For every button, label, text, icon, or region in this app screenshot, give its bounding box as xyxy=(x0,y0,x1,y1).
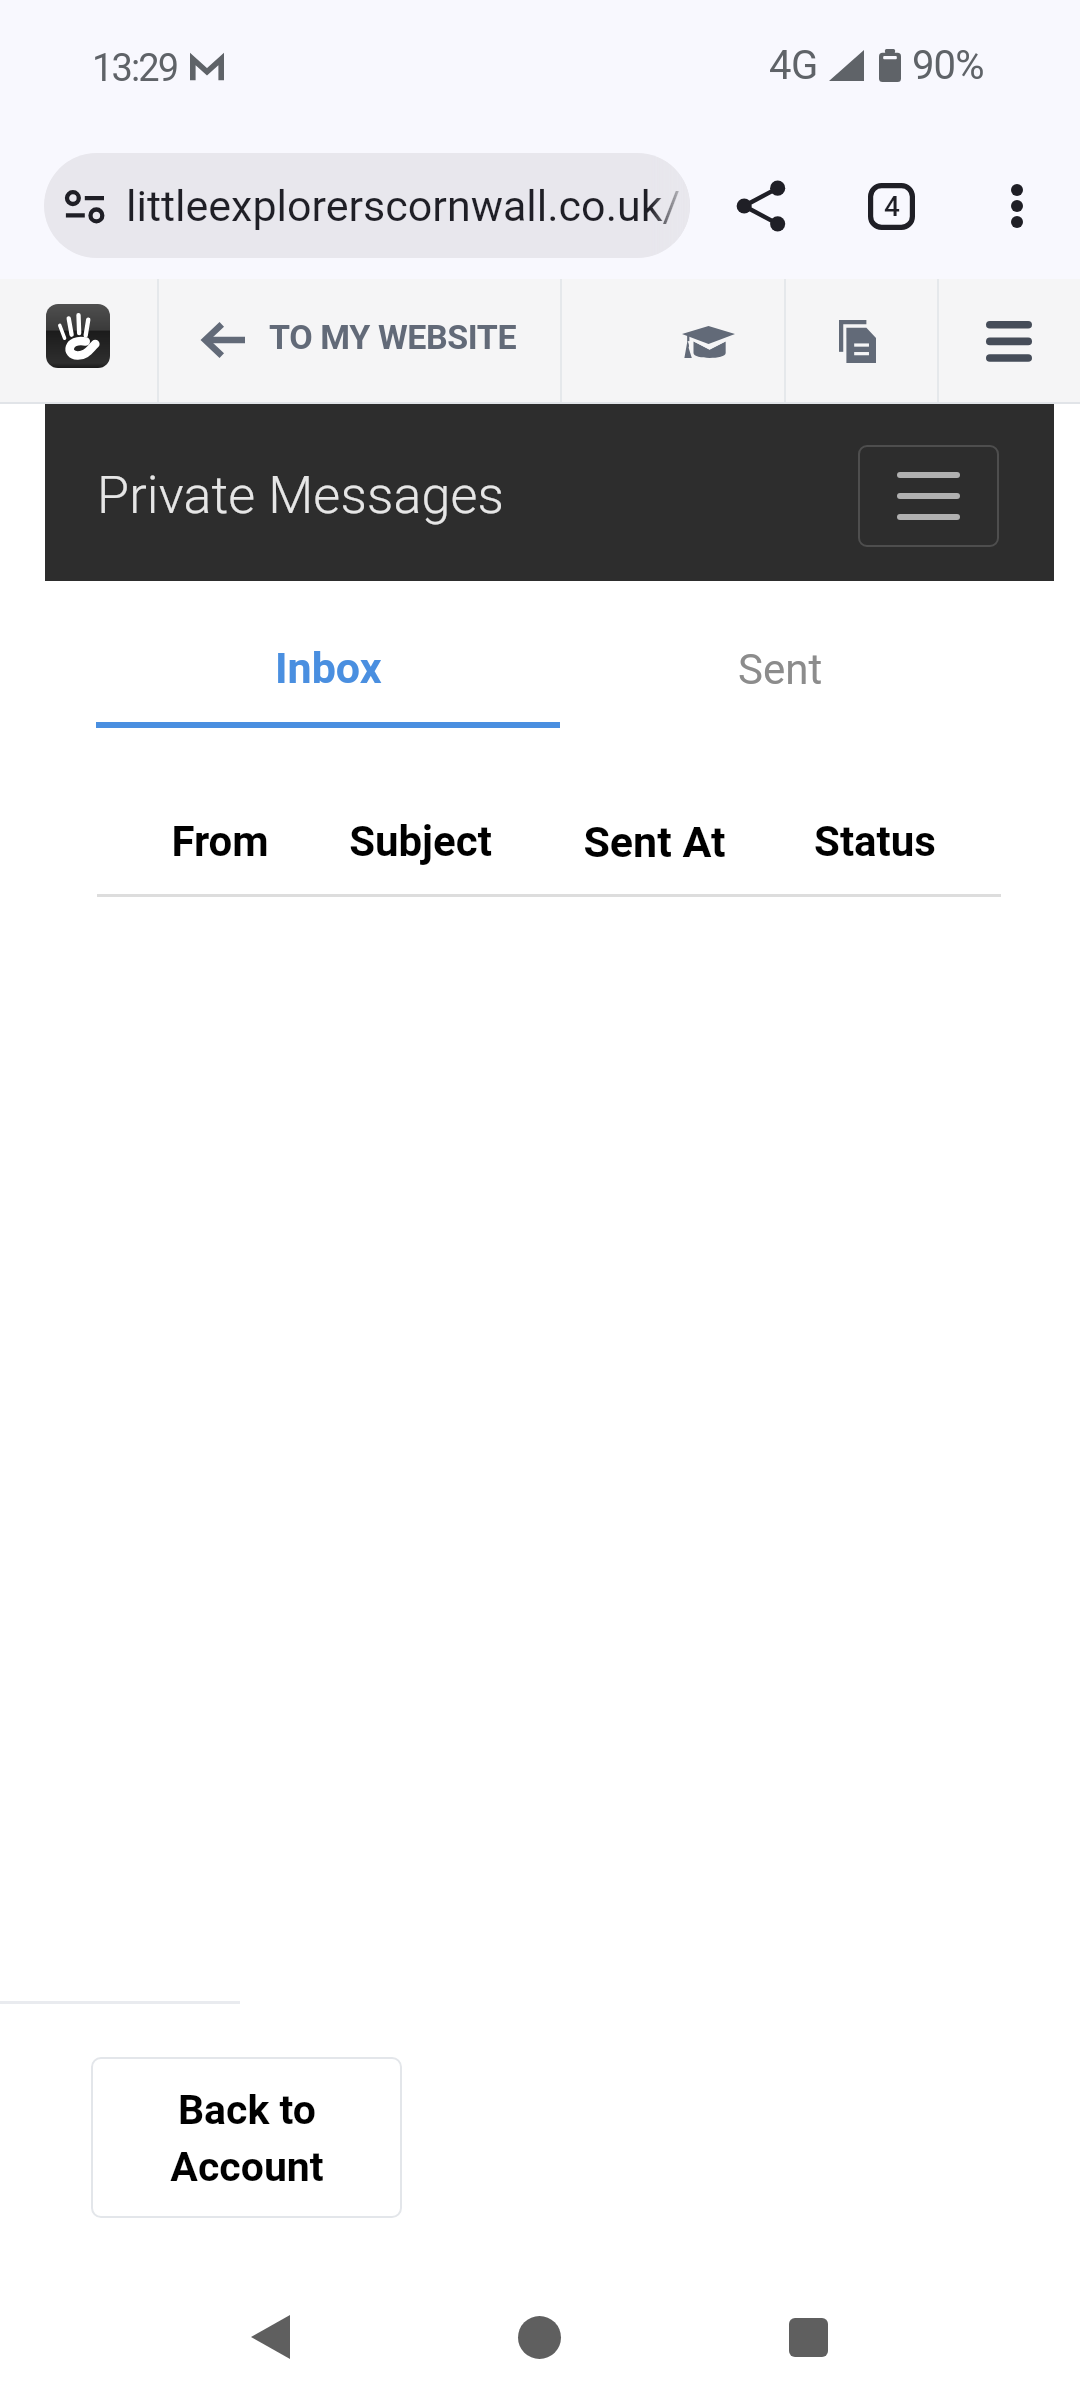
button[interactable]: TO MY WEBSITE xyxy=(157,279,560,404)
staticText: From xyxy=(171,817,269,866)
staticText: 4 xyxy=(884,190,900,223)
staticText: Status xyxy=(814,817,936,866)
button[interactable]: Resources xyxy=(784,279,937,404)
staticText: Sent At xyxy=(583,817,726,867)
button[interactable]: littleexplorerscornwall.co.uk/ xyxy=(44,153,690,258)
staticText: TO MY WEBSITE xyxy=(269,317,517,357)
button[interactable]: Share xyxy=(712,156,812,256)
staticText: Private Messages xyxy=(97,465,504,526)
staticText: Subject xyxy=(349,817,492,866)
button[interactable]: Courses xyxy=(560,279,784,404)
staticText: Sent xyxy=(738,645,823,694)
button[interactable]: Recent apps xyxy=(748,2274,868,2400)
button[interactable]: Back xyxy=(210,2274,330,2400)
button[interactable]: Inbox xyxy=(96,635,560,728)
button[interactable]: Back to Account xyxy=(91,2057,402,2218)
button[interactable]: Menu xyxy=(937,279,1080,404)
staticText: 90% xyxy=(912,42,984,89)
staticText: 13:29 xyxy=(92,46,178,91)
staticText: Back to Account xyxy=(162,2086,332,2191)
staticText: 4G xyxy=(769,42,818,89)
staticText: Inbox xyxy=(275,643,382,693)
button[interactable]: Site logo xyxy=(0,279,157,404)
button[interactable]: Home xyxy=(479,2274,599,2400)
button[interactable]: Toggle navigation xyxy=(858,445,999,547)
button[interactable]: Switch or close tabs, 4 tabs open xyxy=(841,156,941,256)
staticText: littleexplorerscornwall.co.uk/ xyxy=(126,181,681,231)
button[interactable]: Sent xyxy=(560,635,1001,728)
button[interactable]: More options xyxy=(967,156,1067,256)
